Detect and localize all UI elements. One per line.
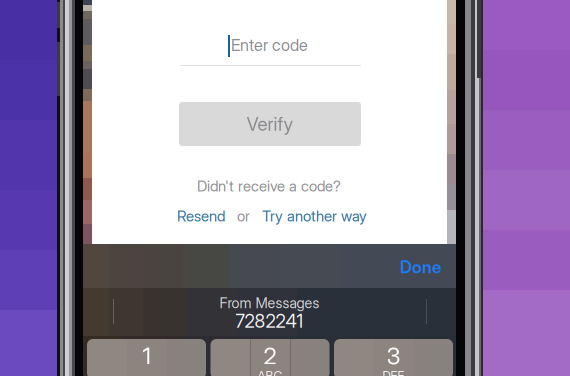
staticText: 1 [142,342,150,370]
staticText: or [225,207,262,225]
button[interactable]: 2 [210,339,329,376]
staticText: DEF [382,368,404,376]
staticText: Didn't receive a code? [197,177,341,195]
staticText: Resend [177,207,225,225]
button[interactable]: Done [400,257,458,277]
staticText: Verify [246,113,293,135]
staticText: Done [400,257,441,277]
button[interactable]: Resend [177,207,225,225]
staticText: ABC [257,368,282,376]
staticText: Try another way [262,207,367,225]
staticText: 2 [263,342,276,370]
button[interactable]: 1 [87,339,206,376]
button[interactable]: Try another way [262,207,367,225]
staticText: 7282241 [235,310,303,332]
staticText: Enter code [231,35,308,55]
button[interactable]: Verify [179,102,361,146]
staticText: 3 [386,342,400,370]
staticText: From Messages [219,294,319,312]
button[interactable]: 3 [334,339,453,376]
